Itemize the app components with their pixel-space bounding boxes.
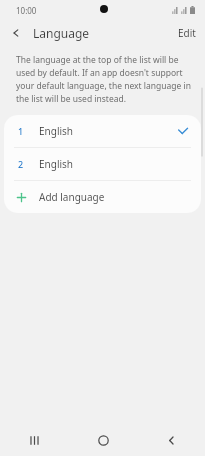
- button[interactable]: Recent apps: [0, 424, 69, 456]
- button[interactable]: Back: [137, 424, 205, 456]
- staticText: Edit: [178, 26, 196, 40]
- staticText: English: [39, 124, 74, 138]
- staticText: 2: [18, 158, 24, 170]
- button[interactable]: Home: [69, 424, 137, 456]
- staticText: The language at the top of the list will…: [16, 54, 191, 105]
- staticText: Add language: [39, 190, 105, 204]
- staticText: Language: [33, 25, 90, 41]
- button[interactable]: Add language: [4, 181, 201, 213]
- button[interactable]: 1: [4, 115, 201, 147]
- button[interactable]: Edit: [169, 22, 205, 44]
- staticText: 10:00: [16, 5, 37, 16]
- staticText: English: [39, 157, 74, 171]
- button[interactable]: Back: [0, 22, 31, 44]
- staticText: 1: [18, 125, 24, 137]
- button[interactable]: 2: [4, 148, 201, 180]
